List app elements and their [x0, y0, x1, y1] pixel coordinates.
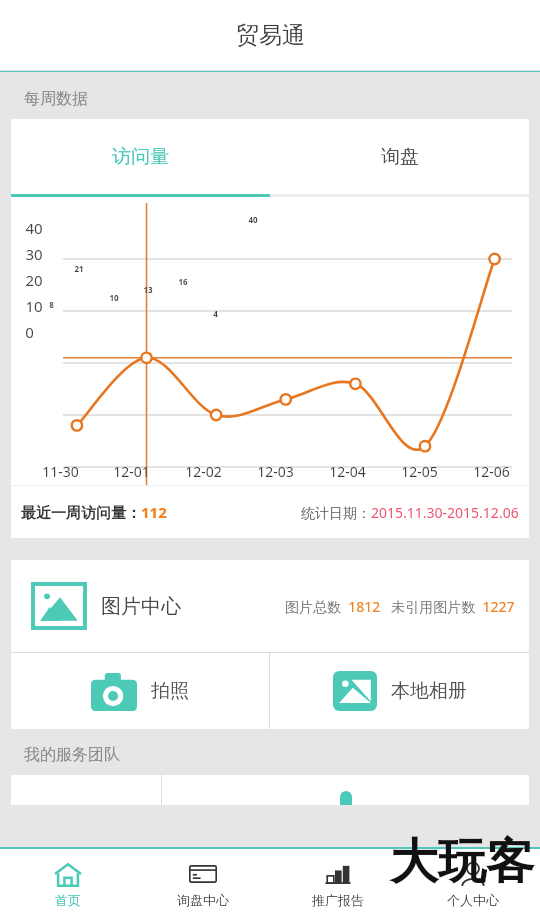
staticText: 12-05	[401, 462, 438, 481]
staticText: 4	[213, 308, 218, 319]
staticText: 0	[25, 322, 34, 342]
staticText: 10	[25, 296, 43, 316]
staticText: 推广报告	[312, 892, 364, 908]
staticText: 21	[74, 263, 84, 274]
staticText: 12-06	[473, 462, 510, 481]
staticText: 11-30	[42, 462, 79, 481]
button[interactable]: 询盘	[270, 119, 529, 194]
staticText: 16	[178, 276, 188, 287]
staticText: 10	[109, 292, 119, 303]
button[interactable]: 首页	[0, 849, 135, 920]
button[interactable]: 图片中心	[33, 560, 515, 652]
staticText: 我的服务团队	[24, 745, 120, 765]
staticText: 13	[143, 284, 153, 295]
staticText: 贸易通	[236, 21, 305, 50]
staticText: 个人中心	[447, 892, 499, 908]
staticText: 询盘中心	[177, 892, 229, 908]
button[interactable]: 本地相册	[270, 653, 529, 729]
staticText: 40	[25, 218, 43, 238]
staticText: 8	[49, 299, 54, 310]
staticText: 询盘	[381, 145, 419, 169]
button[interactable]: 访问量	[11, 119, 270, 194]
staticText: 图片中心	[101, 594, 181, 619]
button[interactable]: 个人中心	[405, 849, 540, 920]
staticText: 最近一周访问量：112	[21, 502, 167, 522]
staticText: 图片总数 1812 未引用图片数 1227	[285, 597, 515, 616]
button[interactable]: 推广报告	[270, 849, 405, 920]
staticText: 拍照	[151, 679, 189, 703]
staticText: 访问量	[112, 145, 169, 169]
staticText: 大玩客	[390, 832, 534, 892]
staticText: 本地相册	[391, 679, 467, 703]
staticText: 30	[25, 244, 43, 264]
staticText: 12-04	[329, 462, 366, 481]
staticText: 每周数据	[24, 89, 88, 109]
staticText: 20	[25, 270, 43, 290]
staticText: 首页	[55, 892, 81, 908]
staticText: 40	[248, 214, 258, 225]
staticText: 12-03	[257, 462, 294, 481]
staticText: 12-02	[185, 462, 222, 481]
button[interactable]: 询盘中心	[135, 849, 270, 920]
button[interactable]: 拍照	[11, 653, 269, 729]
staticText: 12-01	[113, 462, 150, 481]
staticText: 统计日期：2015.11.30-2015.12.06	[301, 503, 519, 522]
